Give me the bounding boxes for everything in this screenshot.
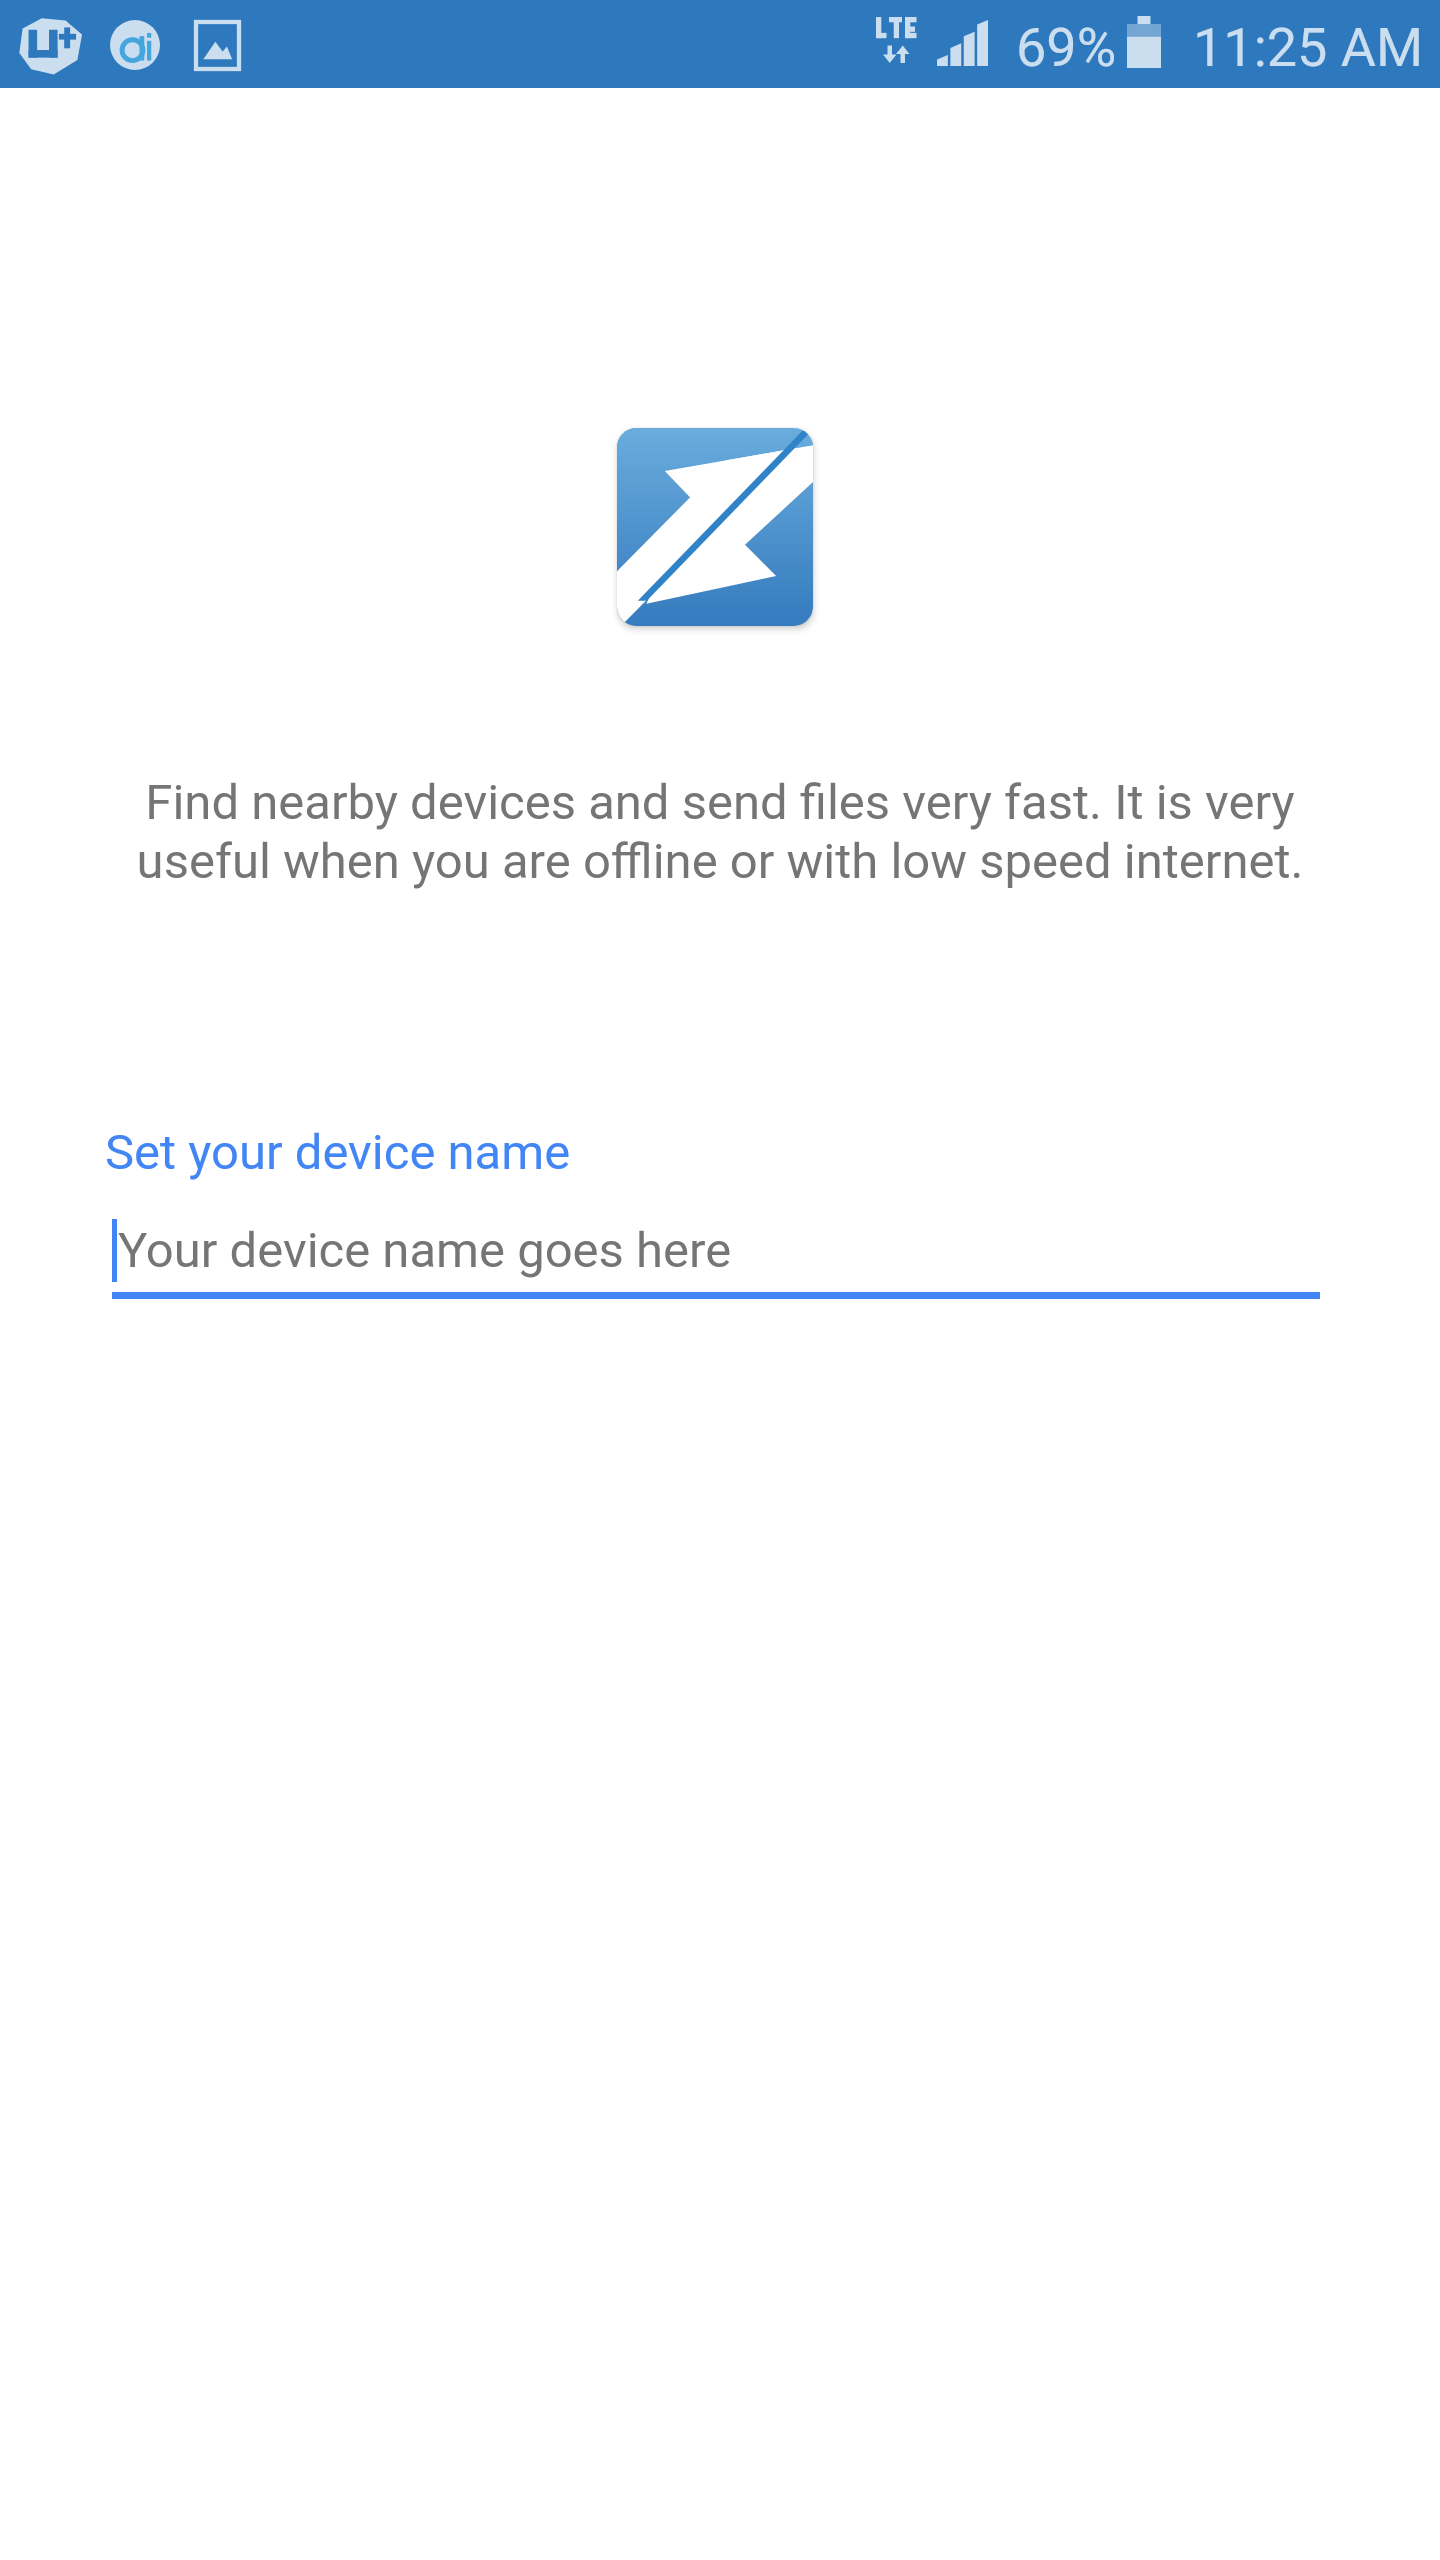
staticText: 69%: [1016, 16, 1117, 79]
other: Screenshot captured: [196, 22, 239, 69]
other: Zapya app logo: [617, 428, 813, 626]
staticText: Set your device name: [105, 1124, 571, 1181]
other: Mobile signal strength: [937, 20, 988, 66]
other: ai notification: [110, 19, 160, 71]
other: Battery 69 percent: [1127, 16, 1161, 68]
other: U+ notification: [18, 17, 84, 75]
button[interactable]: Set your device name: [105, 1124, 1320, 1299]
other: LTE data: [876, 17, 926, 63]
staticText: Your device name goes here: [118, 1222, 732, 1279]
staticText: Find nearby devices and send files very …: [120, 774, 1320, 890]
staticText: 11:25 AM: [1193, 16, 1424, 79]
